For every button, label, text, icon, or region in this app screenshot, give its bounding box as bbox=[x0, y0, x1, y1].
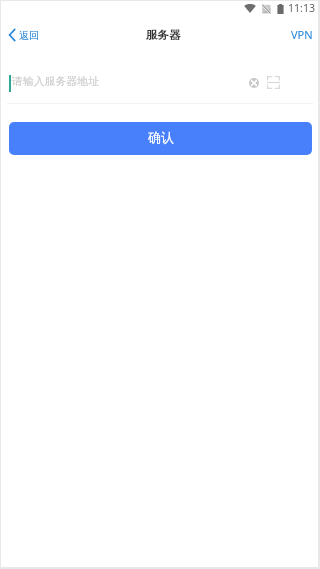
staticText: VPN bbox=[291, 27, 313, 42]
staticText: 11:13 bbox=[288, 1, 316, 15]
button[interactable]: 确认 bbox=[9, 122, 312, 155]
button[interactable]: Server address input bbox=[7, 67, 243, 103]
button[interactable]: Scan QR code bbox=[263, 72, 284, 93]
staticText: 确认 bbox=[148, 129, 174, 145]
button[interactable]: Clear bbox=[243, 72, 264, 93]
button[interactable]: 返回 bbox=[1, 23, 49, 47]
staticText: 服务器 bbox=[146, 28, 181, 42]
staticText: 请输入服务器地址 bbox=[12, 75, 100, 89]
button[interactable]: VPN bbox=[279, 22, 318, 46]
staticText: 返回 bbox=[19, 29, 39, 42]
